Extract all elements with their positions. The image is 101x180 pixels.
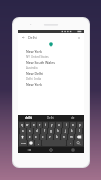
staticText: c	[42, 135, 44, 139]
button[interactable]: Search	[74, 140, 83, 146]
staticText: Delhi, India	[26, 77, 41, 80]
staticText: New Delhi	[26, 71, 44, 76]
button[interactable]: New York	[18, 47, 84, 58]
staticText: ?123	[21, 142, 26, 145]
staticText: New South Wales	[26, 60, 55, 65]
button[interactable]: Clear search	[76, 35, 81, 40]
button[interactable]: u	[56, 122, 62, 128]
staticText: w	[26, 123, 29, 127]
staticText: Australia	[26, 66, 38, 69]
button[interactable]: k	[69, 128, 75, 134]
staticText: r	[39, 123, 41, 127]
button[interactable]: ,	[35, 140, 41, 146]
button[interactable]: l	[76, 128, 82, 134]
button[interactable]: Delhi	[40, 115, 62, 121]
staticText: t	[45, 123, 47, 127]
button[interactable]: n	[61, 134, 67, 140]
button[interactable]: s	[27, 128, 33, 134]
staticText: de	[71, 116, 75, 120]
staticText: n	[63, 135, 65, 139]
button[interactable]: New York	[18, 80, 84, 91]
button[interactable]: d	[34, 128, 40, 134]
button[interactable]: Recents	[62, 147, 84, 153]
staticText: b	[56, 135, 58, 139]
button[interactable]: y	[49, 122, 55, 128]
button[interactable]: v	[47, 134, 53, 140]
button[interactable]: q	[19, 122, 24, 128]
button[interactable]: New Delhi	[18, 69, 84, 80]
staticText: NY, United States	[26, 55, 49, 58]
staticText: d	[36, 129, 38, 133]
button[interactable]: Back	[18, 147, 40, 153]
staticText: h	[57, 129, 59, 133]
button[interactable]: r	[37, 122, 42, 128]
button[interactable]: de	[62, 115, 84, 121]
button[interactable]: m	[68, 134, 74, 140]
button[interactable]: New South Wales	[18, 58, 84, 69]
staticText: q	[21, 123, 23, 127]
button[interactable]: p	[77, 122, 83, 128]
button[interactable]: .	[67, 140, 73, 146]
staticText: g	[50, 129, 52, 133]
button[interactable]: x	[33, 134, 39, 140]
staticText: s	[29, 129, 31, 133]
staticText: Delhi	[28, 35, 37, 40]
staticText: a	[22, 129, 24, 133]
staticText: v	[49, 135, 51, 139]
staticText: i	[66, 123, 67, 127]
button[interactable]: Back	[18, 33, 84, 41]
staticText: u	[58, 123, 60, 127]
button[interactable]: t	[43, 122, 48, 128]
staticText: p	[79, 123, 81, 127]
staticText: f	[44, 129, 45, 133]
button[interactable]: delhi	[18, 115, 40, 121]
button[interactable]: Back	[21, 35, 26, 40]
button[interactable]: e	[31, 122, 36, 128]
staticText: Delhi	[47, 116, 55, 120]
staticText: New York	[26, 82, 42, 87]
button[interactable]: z	[27, 134, 32, 140]
staticText: l	[79, 129, 80, 133]
button[interactable]: i	[63, 122, 69, 128]
staticText: .	[70, 141, 71, 145]
button[interactable]: b	[54, 134, 60, 140]
button[interactable]: Shift	[19, 134, 26, 140]
button[interactable]: c	[40, 134, 46, 140]
staticText: m	[70, 135, 73, 139]
button[interactable]: w	[25, 122, 30, 128]
button[interactable]: j	[62, 128, 68, 134]
button[interactable]: f	[41, 128, 47, 134]
button[interactable]: Emoji	[28, 140, 34, 146]
button[interactable]: Home	[40, 147, 62, 153]
button[interactable]: o	[70, 122, 76, 128]
staticText: z	[29, 135, 31, 139]
staticText: j	[65, 129, 66, 133]
staticText: k	[71, 129, 73, 133]
button[interactable]: ?123	[19, 140, 27, 146]
staticText: New York	[26, 49, 42, 54]
button[interactable]: Backspace	[75, 134, 83, 140]
button[interactable]: g	[48, 128, 54, 134]
staticText: e	[33, 123, 35, 127]
staticText: ,	[38, 141, 39, 145]
staticText: x	[35, 135, 37, 139]
button[interactable]: a	[20, 128, 26, 134]
staticText: delhi	[25, 116, 33, 120]
button[interactable]: h	[55, 128, 61, 134]
staticText: y	[51, 123, 53, 127]
staticText: o	[72, 123, 74, 127]
